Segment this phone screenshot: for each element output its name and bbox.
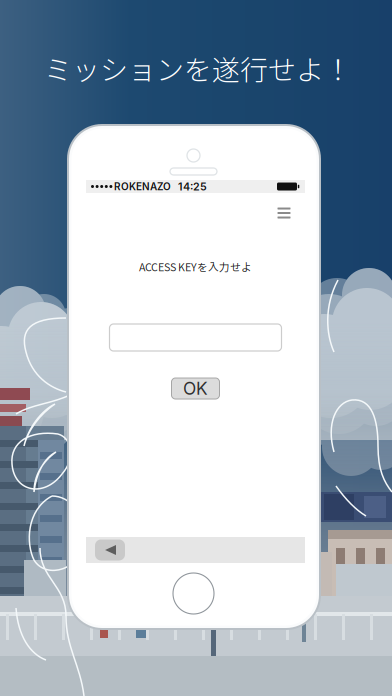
staticText: OK — [183, 378, 208, 399]
button[interactable]: Menu — [271, 200, 297, 226]
staticText: ROKENAZO — [114, 180, 171, 193]
staticText: ACCESS KEYを入力せよ — [139, 259, 252, 274]
button[interactable]: OK — [171, 378, 219, 399]
staticText: ミッションを遂行せよ！ — [44, 48, 352, 88]
staticText: 14:25 — [178, 180, 207, 193]
button[interactable]: Back — [95, 539, 125, 560]
